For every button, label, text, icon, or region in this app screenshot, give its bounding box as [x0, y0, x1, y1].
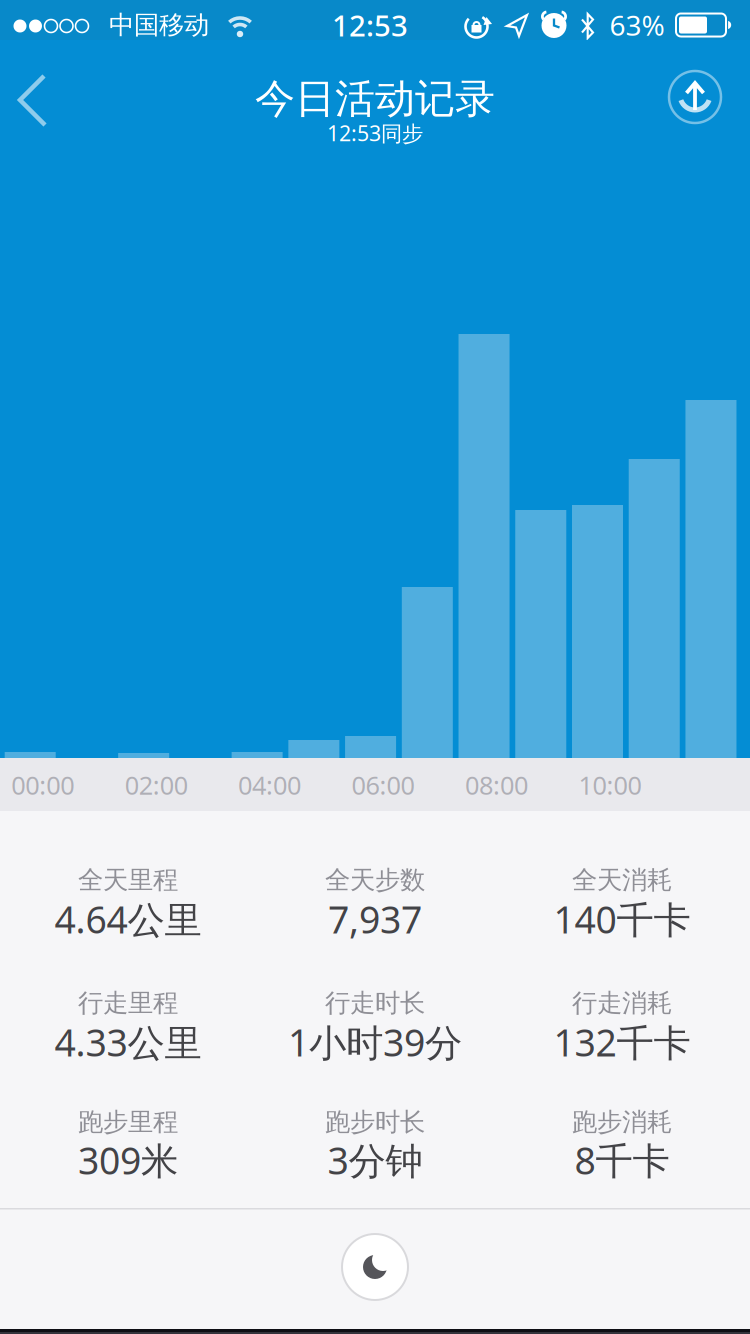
staticText: 63% — [609, 6, 664, 44]
staticText: 12:53同步 — [327, 119, 423, 147]
staticText: 行走时长 — [325, 987, 425, 1018]
staticText: 跑步时长 — [325, 1106, 425, 1137]
staticText: 行走里程 — [78, 987, 178, 1018]
staticText: 4.33公里 — [54, 1017, 201, 1067]
staticText: 行走消耗 — [572, 987, 672, 1018]
button[interactable] — [669, 71, 721, 123]
staticText: 全天里程 — [78, 864, 178, 895]
staticText: 全天消耗 — [572, 864, 672, 895]
staticText: 00:00 — [11, 768, 74, 802]
staticText: 8千卡 — [574, 1135, 669, 1185]
staticText: 1小时39分 — [288, 1017, 462, 1067]
staticText: 132千卡 — [553, 1017, 690, 1067]
staticText: 06:00 — [352, 768, 415, 802]
staticText: 309米 — [78, 1135, 178, 1185]
staticText: 08:00 — [465, 768, 528, 802]
button[interactable] — [0, 40, 90, 152]
staticText: 3分钟 — [327, 1135, 422, 1185]
staticText: 04:00 — [238, 768, 301, 802]
staticText: 今日活动记录 — [255, 74, 495, 123]
button[interactable] — [342, 1234, 408, 1300]
staticText: 4.64公里 — [54, 894, 201, 944]
staticText: 跑步消耗 — [572, 1106, 672, 1137]
staticText: 12:53 — [332, 5, 408, 44]
staticText: 140千卡 — [553, 894, 690, 944]
staticText: 全天步数 — [325, 864, 425, 895]
staticText: 10:00 — [578, 768, 641, 802]
staticText: 中国移动 — [109, 9, 209, 40]
staticText: 跑步里程 — [78, 1106, 178, 1137]
staticText: 02:00 — [125, 768, 188, 802]
staticText: 7,937 — [328, 894, 422, 944]
